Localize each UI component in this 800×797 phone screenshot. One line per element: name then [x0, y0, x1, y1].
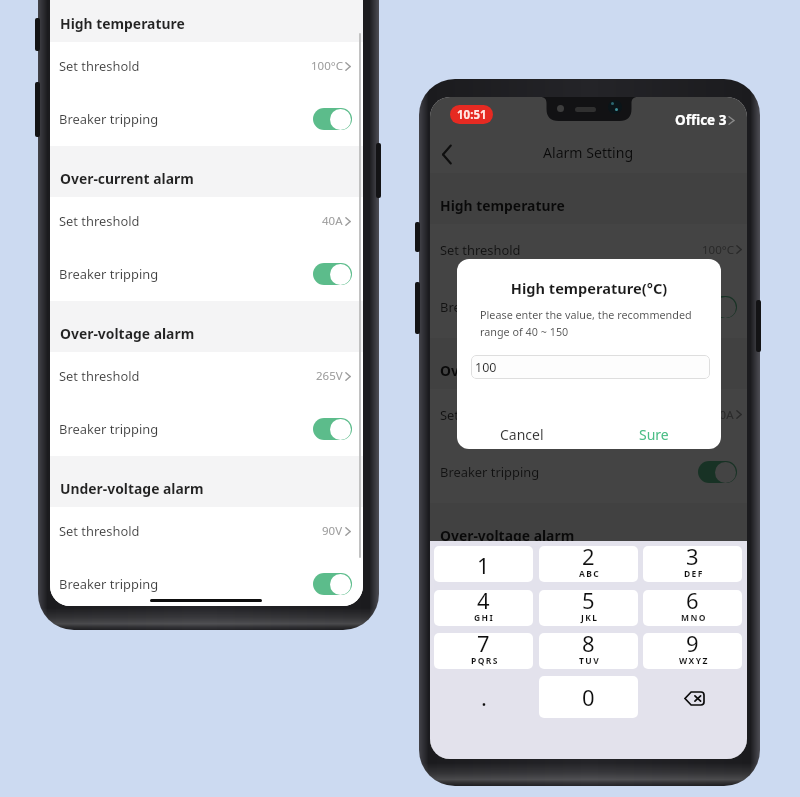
- staticText: Office 3: [675, 111, 727, 129]
- button[interactable]: 3: [643, 546, 742, 582]
- button[interactable]: Breaker tripping: [430, 281, 747, 338]
- button[interactable]: Set threshold: [430, 389, 747, 446]
- staticText: Set threshold: [59, 57, 140, 75]
- staticText: 1: [477, 550, 490, 580]
- button[interactable]: Decimal point: [434, 676, 533, 718]
- button[interactable]: Set threshold: [50, 42, 363, 94]
- staticText: Sure: [639, 425, 669, 444]
- staticText: Over-voltage alarm: [440, 526, 575, 545]
- button[interactable]: 1: [434, 546, 533, 582]
- button[interactable]: Backspace: [643, 676, 742, 718]
- staticText: 4: [477, 590, 490, 615]
- button[interactable]: Breaker tripping: [50, 559, 363, 606]
- staticText: PQRS: [471, 655, 499, 667]
- staticText: DEF: [684, 568, 704, 580]
- staticText: Breaker tripping: [59, 575, 159, 593]
- button[interactable]: Sure: [616, 420, 692, 448]
- staticText: 265V: [316, 368, 343, 384]
- button[interactable]: Breaker tripping: [430, 611, 747, 668]
- staticText: Set threshold: [59, 212, 140, 230]
- staticText: Set threshold: [59, 522, 140, 540]
- button[interactable]: Set threshold: [50, 197, 363, 249]
- button[interactable]: Cancel: [484, 420, 560, 448]
- button[interactable]: 9: [643, 633, 742, 669]
- staticText: Breaker tripping: [440, 463, 540, 481]
- staticText: 2: [582, 546, 595, 571]
- staticText: 5: [582, 590, 595, 615]
- staticText: MNO: [681, 612, 707, 624]
- button[interactable]: Breaker tripping: [430, 446, 747, 503]
- staticText: 100°C: [311, 58, 343, 74]
- staticText: Over-voltage alarm: [60, 324, 195, 343]
- staticText: 40A: [713, 407, 734, 423]
- staticText: High temperature: [440, 196, 565, 215]
- button[interactable]: Breaker tripping: [50, 94, 363, 146]
- staticText: Breaker tripping: [59, 265, 159, 283]
- staticText: Set threshold: [440, 571, 521, 589]
- staticText: Alarm Setting: [543, 143, 634, 162]
- staticText: 265V: [707, 572, 734, 588]
- staticText: TUV: [579, 655, 601, 667]
- button[interactable]: Breaker tripping: [50, 404, 363, 456]
- staticText: Breaker tripping: [59, 420, 159, 438]
- button[interactable]: 2: [539, 546, 638, 582]
- button[interactable]: 0: [539, 676, 638, 718]
- staticText: 6: [686, 590, 699, 615]
- staticText: .: [481, 682, 487, 712]
- button[interactable]: 6: [643, 590, 742, 626]
- staticText: Set threshold: [440, 406, 521, 424]
- staticText: 10:51: [457, 107, 487, 123]
- staticText: Over-current alarm: [440, 361, 574, 380]
- staticText: 0: [582, 682, 595, 712]
- staticText: Over-current alarm: [60, 169, 194, 188]
- staticText: High temperature(°C): [457, 278, 721, 298]
- button[interactable]: Set threshold: [50, 507, 363, 559]
- staticText: Under-voltage alarm: [60, 479, 204, 498]
- staticText: Breaker tripping: [59, 110, 159, 128]
- button[interactable]: 8: [539, 633, 638, 669]
- staticText: Cancel: [500, 425, 544, 444]
- staticText: Set threshold: [59, 367, 140, 385]
- button[interactable]: 5: [539, 590, 638, 626]
- staticText: JKL: [581, 612, 599, 624]
- staticText: Set threshold: [440, 241, 521, 259]
- staticText: 40A: [322, 213, 343, 229]
- staticText: 8: [582, 633, 595, 658]
- staticText: WXYZ: [679, 655, 709, 667]
- staticText: GHI: [474, 612, 495, 624]
- button[interactable]: Set threshold: [430, 554, 747, 611]
- button[interactable]: Breaker tripping: [50, 249, 363, 301]
- staticText: 3: [686, 546, 699, 571]
- staticText: Breaker tripping: [440, 298, 540, 316]
- staticText: High temperature: [60, 14, 185, 33]
- staticText: Please enter the value, the recommended …: [480, 307, 696, 339]
- button[interactable]: Back: [435, 142, 459, 166]
- button[interactable]: Set threshold: [50, 352, 363, 404]
- button[interactable]: 4: [434, 590, 533, 626]
- staticText: 9: [686, 633, 699, 658]
- staticText: 90V: [322, 523, 343, 539]
- staticText: 100°C: [702, 242, 734, 258]
- staticText: ABC: [579, 568, 601, 580]
- staticText: 7: [477, 633, 490, 658]
- staticText: 100: [475, 359, 497, 376]
- button[interactable]: 7: [434, 633, 533, 669]
- button[interactable]: Set threshold: [430, 224, 747, 281]
- staticText: Breaker tripping: [440, 628, 540, 646]
